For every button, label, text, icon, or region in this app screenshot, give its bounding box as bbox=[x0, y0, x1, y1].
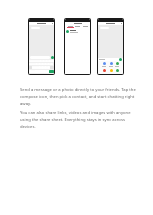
staticText: You can also share links, videos and ima… bbox=[20, 110, 141, 130]
staticText: Send a message or a photo directly to yo… bbox=[20, 87, 141, 107]
